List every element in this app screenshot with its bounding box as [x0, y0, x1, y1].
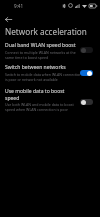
button[interactable]: Switch between networks — [0, 64, 100, 82]
staticText: Dual band WLAN speed boost — [5, 42, 76, 49]
staticText: Use both WLAN and mobile data to boost s… — [5, 102, 74, 112]
button[interactable]: Back — [0, 13, 16, 26]
button[interactable]: Dual band WLAN speed boost — [0, 42, 100, 60]
staticText: 9:41 — [14, 3, 24, 9]
staticText: Switch between networks — [5, 64, 66, 71]
staticText: Connect to multiple WLAN networks at the… — [5, 50, 76, 60]
button[interactable]: Toggle — [80, 99, 93, 105]
button[interactable]: Use mobile data to boost speed — [0, 88, 100, 112]
staticText: Switch to mobile data when WLAN connecti… — [5, 72, 80, 82]
staticText: Use mobile data to boost speed — [5, 88, 65, 101]
button[interactable]: Toggle — [80, 47, 93, 53]
button[interactable]: Toggle — [80, 70, 93, 76]
staticText: Network acceleration — [5, 26, 87, 37]
